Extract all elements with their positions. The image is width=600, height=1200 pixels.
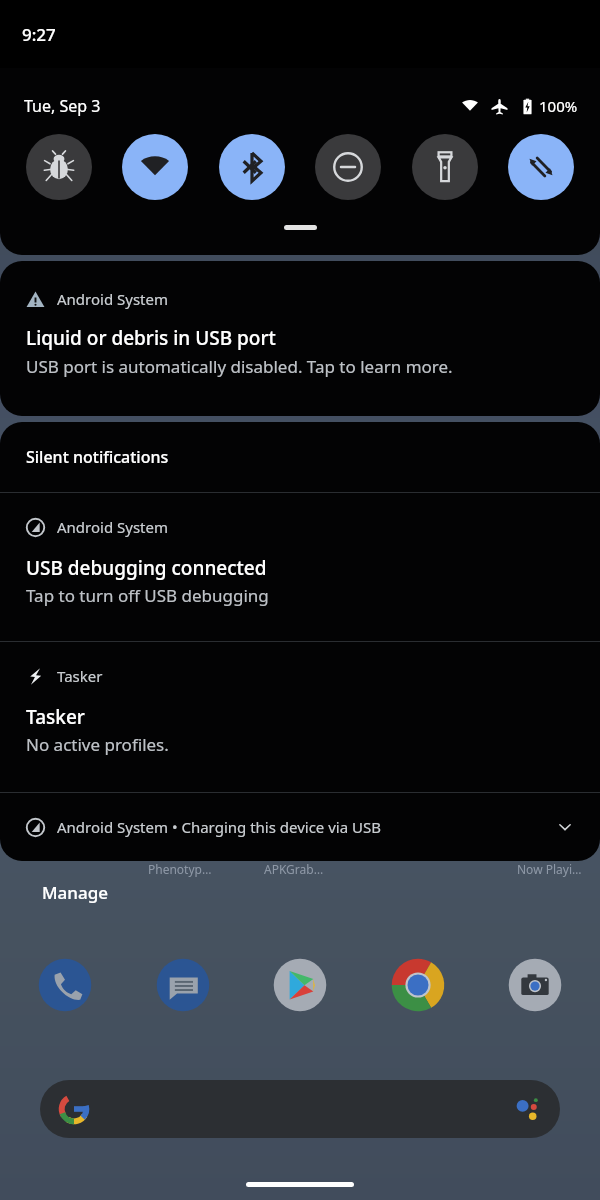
button[interactable]: Android System: [0, 261, 600, 416]
staticText: APKGrab…: [264, 861, 324, 877]
staticText: Tasker: [26, 704, 85, 730]
button[interactable]: Bug report: [26, 134, 92, 200]
staticText: Tue, Sep 3: [24, 95, 101, 117]
staticText: USB debugging connected: [26, 555, 267, 581]
staticText: Now Playi…: [517, 861, 582, 877]
staticText: Android System: [57, 517, 169, 537]
button[interactable]: Wi-Fi: [122, 134, 188, 200]
button[interactable]: Play Store: [263, 948, 337, 1022]
button[interactable]: Camera: [498, 948, 572, 1022]
button[interactable]: Manage: [38, 877, 113, 908]
staticText: 100%: [539, 96, 578, 116]
button[interactable]: Flashlight: [412, 134, 478, 200]
button[interactable]: Tasker: [0, 642, 600, 792]
button[interactable]: Search: [40, 1080, 560, 1138]
staticText: Android System: [57, 289, 169, 309]
staticText: Tasker: [57, 666, 103, 686]
button[interactable]: Do Not Disturb: [315, 134, 381, 200]
button[interactable]: Android System: [0, 493, 600, 641]
staticText: Phenotyp…: [148, 861, 212, 877]
button[interactable]: Android System • Charging this device vi…: [0, 793, 600, 861]
button[interactable]: Bluetooth: [219, 134, 285, 200]
staticText: USB port is automatically disabled. Tap …: [26, 355, 453, 378]
button[interactable]: Expand: [552, 814, 578, 840]
button[interactable]: Auto-rotate: [508, 134, 574, 200]
button[interactable]: Silent notifications: [0, 422, 600, 492]
staticText: Android System • Charging this device vi…: [57, 817, 381, 837]
staticText: Silent notifications: [26, 446, 169, 468]
button[interactable]: Messages: [146, 948, 220, 1022]
button[interactable]: Phone: [28, 948, 102, 1022]
staticText: Manage: [42, 881, 109, 904]
staticText: 9:27: [22, 23, 56, 46]
staticText: Liquid or debris in USB port: [26, 325, 276, 351]
staticText: No active profiles.: [26, 733, 169, 756]
button[interactable]: Chrome: [381, 948, 455, 1022]
staticText: Tap to turn off USB debugging: [26, 584, 269, 607]
